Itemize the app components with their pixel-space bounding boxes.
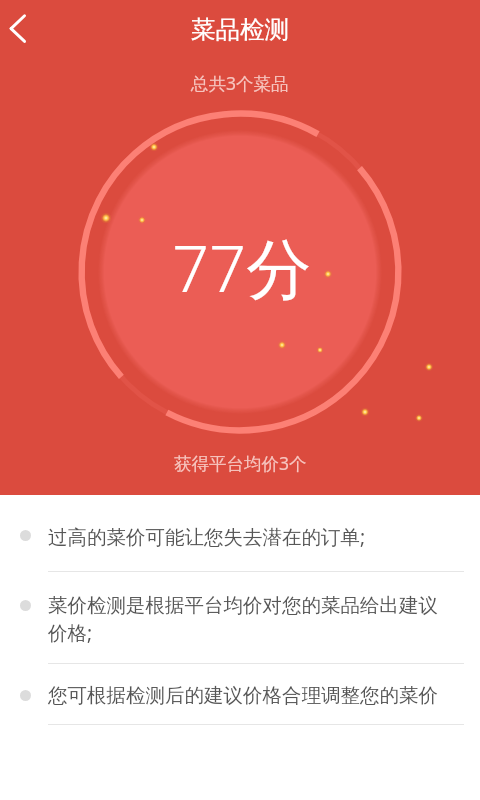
staticText: 菜品检测 <box>191 14 289 45</box>
staticText: 您可根据检测后的建议价格合理调整您的菜价 <box>48 683 438 708</box>
button[interactable]: 菜价检测是根据平台均价对您的菜品给出建议价格; <box>0 572 480 663</box>
button[interactable]: 您可根据检测后的建议价格合理调整您的菜价 <box>0 664 480 724</box>
button[interactable]: 过高的菜价可能让您失去潜在的订单; <box>0 495 480 571</box>
staticText: 过高的菜价可能让您失去潜在的订单; <box>48 523 366 550</box>
button[interactable]: Back <box>0 7 40 47</box>
staticText: 菜价检测是根据平台均价对您的菜品给出建议价格; <box>48 593 450 646</box>
staticText: 总共3个菜品 <box>191 71 289 95</box>
staticText: 获得平台均价3个 <box>174 451 307 475</box>
staticText: 77分 <box>172 223 312 312</box>
